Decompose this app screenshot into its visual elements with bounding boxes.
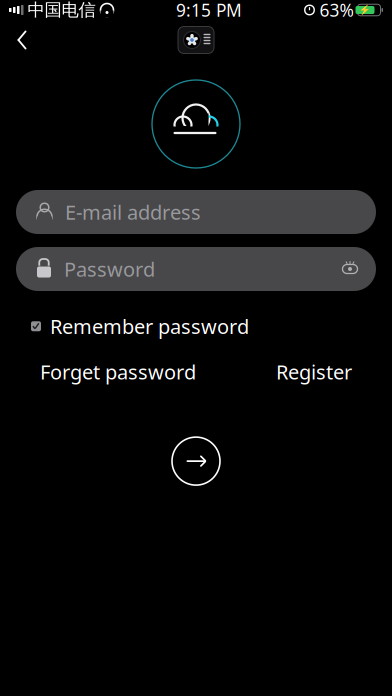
button[interactable]: Forget password [40, 355, 196, 389]
staticText: 63% [319, 0, 353, 21]
staticText: Register [276, 359, 352, 385]
staticText: Remember password [50, 313, 249, 340]
staticText: Password [64, 256, 155, 282]
staticText: 9:15 PM [176, 0, 242, 21]
button[interactable]: Back [0, 20, 44, 60]
button[interactable]: Sign in [170, 435, 222, 487]
staticText: 中国电信 [27, 0, 95, 21]
staticText: Forget password [40, 359, 196, 385]
button[interactable]: Show password [333, 252, 367, 286]
button[interactable]: Register [276, 355, 352, 389]
staticText: ⚡ [359, 5, 371, 15]
button[interactable]: Remember password [30, 309, 249, 344]
staticText: E-mail address [65, 199, 201, 225]
